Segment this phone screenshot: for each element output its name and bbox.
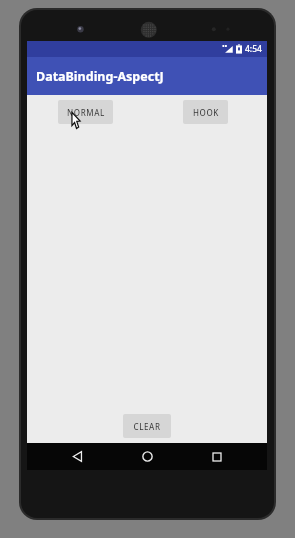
- button[interactable]: NORMAL: [58, 100, 113, 124]
- staticText: HOOK: [193, 107, 219, 118]
- staticText: CLEAR: [133, 421, 161, 432]
- button[interactable]: Back: [57, 443, 97, 470]
- button[interactable]: Home: [127, 443, 167, 470]
- button[interactable]: CLEAR: [123, 414, 171, 438]
- button[interactable]: Recent apps: [197, 443, 237, 470]
- staticText: 4:54: [245, 43, 262, 55]
- staticText: DataBinding-AspectJ: [36, 68, 164, 85]
- staticText: NORMAL: [67, 107, 105, 118]
- button[interactable]: HOOK: [183, 100, 228, 124]
